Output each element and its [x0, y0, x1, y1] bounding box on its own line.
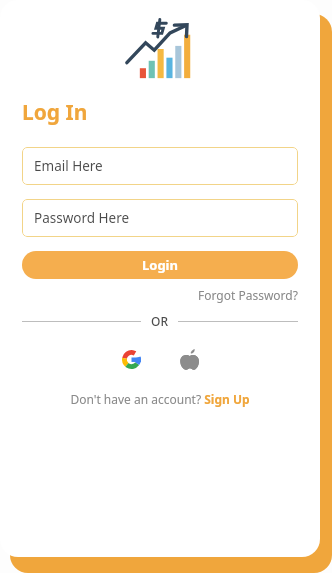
staticText: Password Here — [34, 209, 130, 227]
button[interactable]: Email Here — [22, 147, 298, 185]
staticText: OR — [151, 313, 168, 329]
button[interactable]: Don't have an account? Sign Up — [70, 391, 250, 407]
button[interactable]: Login — [22, 251, 298, 279]
staticText: Log In — [22, 98, 88, 127]
button[interactable]: Password Here — [22, 199, 298, 237]
staticText: Don't have an account? Sign Up — [70, 391, 250, 407]
button[interactable]: Sign in with Google — [117, 345, 145, 373]
staticText: Email Here — [34, 157, 103, 175]
staticText: Login — [142, 256, 178, 274]
button[interactable]: Sign in with Apple — [175, 345, 203, 373]
staticText: Forgot Password? — [198, 287, 298, 303]
button[interactable]: Forgot Password? — [198, 287, 298, 303]
